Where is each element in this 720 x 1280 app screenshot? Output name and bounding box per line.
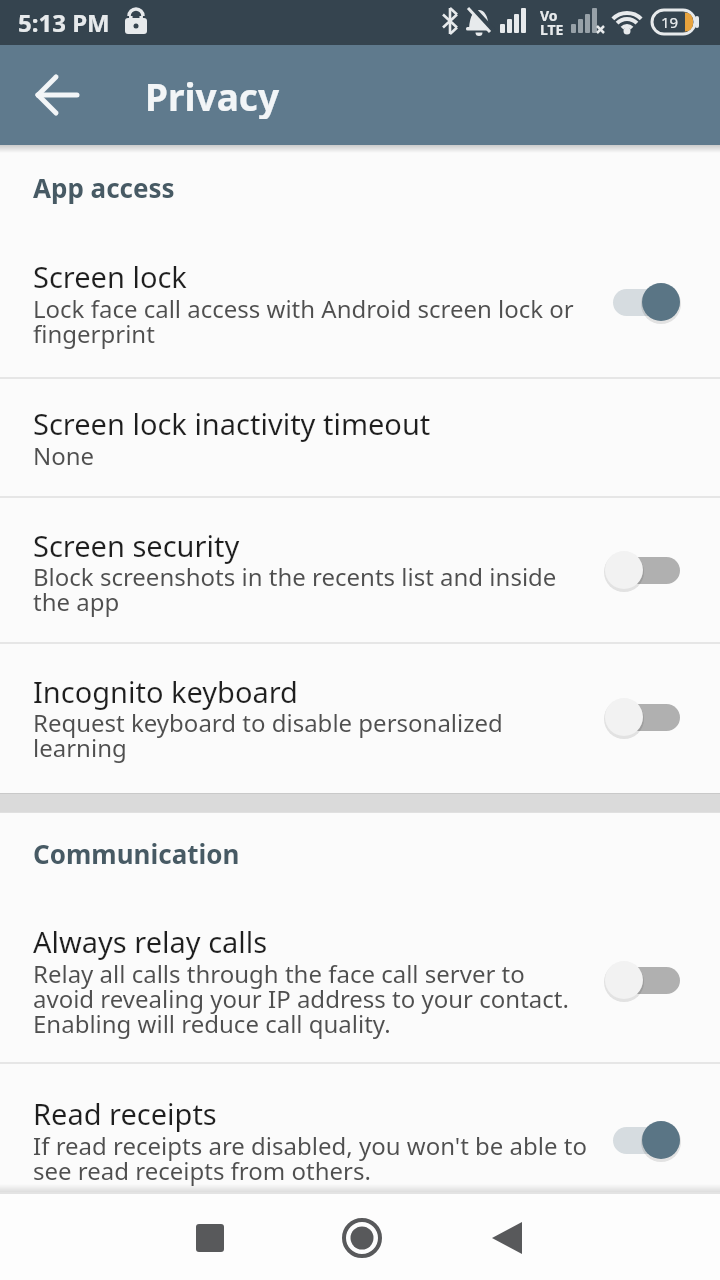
button[interactable] <box>603 1120 683 1160</box>
staticText: None <box>33 439 95 472</box>
staticText: see read receipts from others. <box>33 1154 371 1187</box>
staticText: learning <box>33 731 127 764</box>
button[interactable] <box>175 1203 245 1273</box>
staticText: Privacy <box>145 71 280 119</box>
staticText: Always relay calls <box>33 922 268 961</box>
button[interactable] <box>0 379 720 496</box>
button[interactable] <box>0 1064 720 1192</box>
button[interactable] <box>0 498 720 642</box>
staticText: Read receipts <box>33 1094 217 1133</box>
staticText: Screen lock <box>33 257 187 296</box>
staticText: Enabling will reduce call quality. <box>33 1007 391 1040</box>
staticText: the app <box>33 585 120 618</box>
button[interactable] <box>0 225 720 377</box>
staticText: LTE <box>540 20 564 39</box>
staticText: Screen lock inactivity timeout <box>33 404 431 443</box>
staticText: avoid revealing your IP address to your … <box>33 982 569 1015</box>
staticText: fingerprint <box>33 317 155 350</box>
staticText: Lock face call access with Android scree… <box>33 292 574 325</box>
staticText: 5:13 PM <box>18 6 110 39</box>
staticText: 19 <box>661 12 679 32</box>
button[interactable] <box>603 697 683 737</box>
staticText: Vo <box>540 6 558 25</box>
button[interactable] <box>603 960 683 1000</box>
staticText: Block screenshots in the recents list an… <box>33 560 557 593</box>
button[interactable] <box>603 550 683 590</box>
staticText: If read receipts are disabled, you won't… <box>33 1129 587 1162</box>
button[interactable] <box>0 890 720 1062</box>
button[interactable] <box>327 1203 397 1273</box>
staticText: Communication <box>33 836 240 871</box>
button[interactable] <box>472 1203 542 1273</box>
staticText: Incognito keyboard <box>33 672 298 711</box>
staticText: Screen security <box>33 526 240 565</box>
button[interactable] <box>28 66 86 124</box>
staticText: App access <box>33 170 175 205</box>
button[interactable] <box>603 282 683 322</box>
staticText: Relay all calls through the face call se… <box>33 957 525 990</box>
button[interactable] <box>0 644 720 794</box>
staticText: Request keyboard to disable personalized <box>33 706 503 739</box>
